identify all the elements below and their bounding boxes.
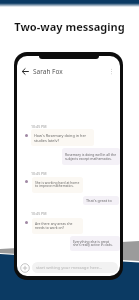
staticText: Sarah Fox [33,67,63,76]
staticText: How's Rosemary doing in her studies late… [34,133,91,142]
staticText: Everything else is great, she's really a… [73,239,117,247]
button[interactable]: Are there any areas she needs to work on… [32,218,83,234]
button[interactable]: She is working hard at home to improve m… [32,177,83,193]
button[interactable]: start writing your message here... [32,262,118,273]
staticText: 10:45 PM [31,211,47,216]
staticText: Are there any areas she needs to work on… [35,221,80,230]
button[interactable]: Back [21,67,30,76]
staticText: Rosemary is doing well in all the subjec… [65,152,117,161]
staticText: She is working hard at home to improve m… [35,180,80,188]
staticText: 10:45 PM [31,124,47,129]
staticText: Two-way messaging [0,19,139,34]
staticText: That's great to hear. [86,198,116,203]
button[interactable]: Everything else is great, she's really a… [70,236,120,251]
button[interactable]: More options [107,67,116,76]
button[interactable]: Add attachment [20,263,30,273]
button[interactable]: Rosemary is doing well in all the subjec… [62,148,120,165]
button[interactable]: How's Rosemary doing in her studies late… [31,129,94,146]
staticText: 10:45 PM [31,171,47,176]
button[interactable]: That's great to hear. [83,196,119,205]
staticText: start writing your message here... [36,265,103,271]
